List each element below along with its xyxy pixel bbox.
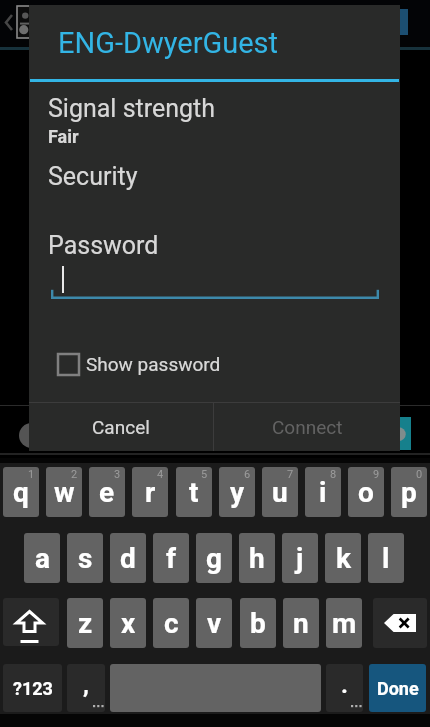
staticText: b	[250, 607, 266, 640]
staticText: l	[382, 542, 390, 575]
button[interactable]: t	[176, 467, 212, 517]
button[interactable]: r	[132, 467, 168, 517]
button[interactable]: x	[110, 598, 146, 648]
staticText: n	[293, 607, 309, 640]
button[interactable]: u	[262, 467, 298, 517]
staticText: e	[99, 476, 115, 509]
button[interactable]: f	[153, 533, 189, 583]
button[interactable]: j	[282, 533, 318, 583]
staticText: 2	[71, 468, 78, 481]
button[interactable]: l	[368, 533, 404, 583]
staticText: Password	[48, 231, 159, 260]
staticText: m	[332, 607, 357, 640]
button[interactable]: Connect	[214, 403, 400, 451]
staticText: ?123	[13, 678, 53, 699]
staticText: x	[121, 607, 136, 640]
staticText: Signal strength	[48, 94, 216, 123]
staticText: 8	[330, 468, 337, 481]
staticText: Cancel	[92, 416, 150, 438]
button[interactable]: h	[239, 533, 275, 583]
staticText: u	[272, 476, 288, 509]
staticText: j	[296, 542, 304, 575]
button[interactable]: k	[325, 533, 361, 583]
button[interactable]: b	[240, 598, 276, 648]
staticText: h	[249, 542, 265, 575]
staticText: a	[35, 542, 50, 575]
button[interactable]: Shift	[3, 598, 59, 646]
button[interactable]: n	[283, 598, 319, 648]
staticText: .	[341, 671, 348, 699]
button[interactable]: o	[348, 467, 384, 517]
button[interactable]	[51, 286, 379, 300]
staticText: 3	[114, 468, 121, 481]
button[interactable]: c	[153, 598, 189, 648]
button[interactable]: y	[219, 467, 255, 517]
staticText: o	[358, 476, 374, 509]
button[interactable]: Cancel	[29, 403, 213, 451]
button[interactable]: d	[110, 533, 146, 583]
staticText: Security	[48, 162, 138, 191]
staticText: ,	[83, 671, 89, 699]
button[interactable]: Backspace	[373, 598, 427, 648]
staticText: 9	[373, 468, 380, 481]
staticText: 5	[201, 468, 208, 481]
staticText: r	[145, 476, 156, 509]
staticText: Fair	[48, 126, 79, 147]
button[interactable]: w	[46, 467, 82, 517]
staticText: v	[207, 607, 222, 640]
button[interactable]: ?123	[3, 664, 62, 712]
staticText: w	[54, 476, 75, 509]
button[interactable]: Show password	[58, 345, 214, 383]
staticText: c	[164, 607, 179, 640]
button[interactable]: e	[89, 467, 125, 517]
button[interactable]: q	[3, 467, 39, 517]
button[interactable]: p	[391, 467, 427, 517]
staticText: s	[78, 542, 93, 575]
staticText: Done	[377, 678, 419, 699]
button[interactable]: s	[67, 533, 103, 583]
staticText: 1	[28, 468, 35, 481]
staticText: 7	[287, 468, 294, 481]
staticText: z	[78, 607, 93, 640]
button[interactable]: v	[196, 598, 232, 648]
button[interactable]: Navigate up	[5, 14, 13, 31]
button[interactable]: g	[196, 533, 232, 583]
staticText: ENG-DwyerGuest	[58, 26, 279, 60]
staticText: 4	[157, 468, 164, 481]
staticText: g	[206, 542, 222, 575]
staticText: k	[336, 542, 351, 575]
button[interactable]: m	[326, 598, 362, 648]
button[interactable]: z	[67, 598, 103, 648]
button[interactable]: i	[305, 467, 341, 517]
button[interactable]: ,	[67, 664, 105, 712]
staticText: d	[120, 542, 136, 575]
staticText: f	[166, 542, 177, 575]
button[interactable]: Done	[369, 664, 426, 712]
button[interactable]: .	[326, 664, 363, 712]
staticText: Connect	[272, 416, 343, 438]
staticText: 0	[416, 468, 423, 481]
staticText: p	[401, 476, 417, 509]
staticText: i	[319, 476, 327, 509]
staticText: Show password	[86, 353, 221, 375]
staticText: t	[189, 476, 199, 509]
staticText: q	[13, 476, 29, 509]
button[interactable]: a	[24, 533, 60, 583]
staticText: y	[230, 476, 245, 509]
button[interactable]: App icon	[17, 6, 32, 38]
staticText: 6	[244, 468, 251, 481]
